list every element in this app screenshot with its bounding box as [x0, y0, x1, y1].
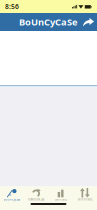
staticText: 8:56: [5, 2, 19, 11]
button[interactable]: StAiRcAsE: [48, 186, 73, 202]
staticText: RaNdOmCaSe: [28, 198, 45, 201]
button[interactable]: BoUnCyCaSe: [0, 186, 24, 202]
button[interactable]: RaNdOmCaSe: [24, 186, 48, 202]
staticText: BoUnCyCaSe: [19, 16, 78, 28]
button[interactable]: Share: [82, 17, 94, 26]
button[interactable]: AlTeRnAtE: [73, 186, 97, 202]
staticText: AlTeRnAtE: [78, 198, 92, 201]
staticText: StAiRcAsE: [55, 198, 67, 201]
staticText: BoUnCyCaSe: [4, 198, 21, 201]
